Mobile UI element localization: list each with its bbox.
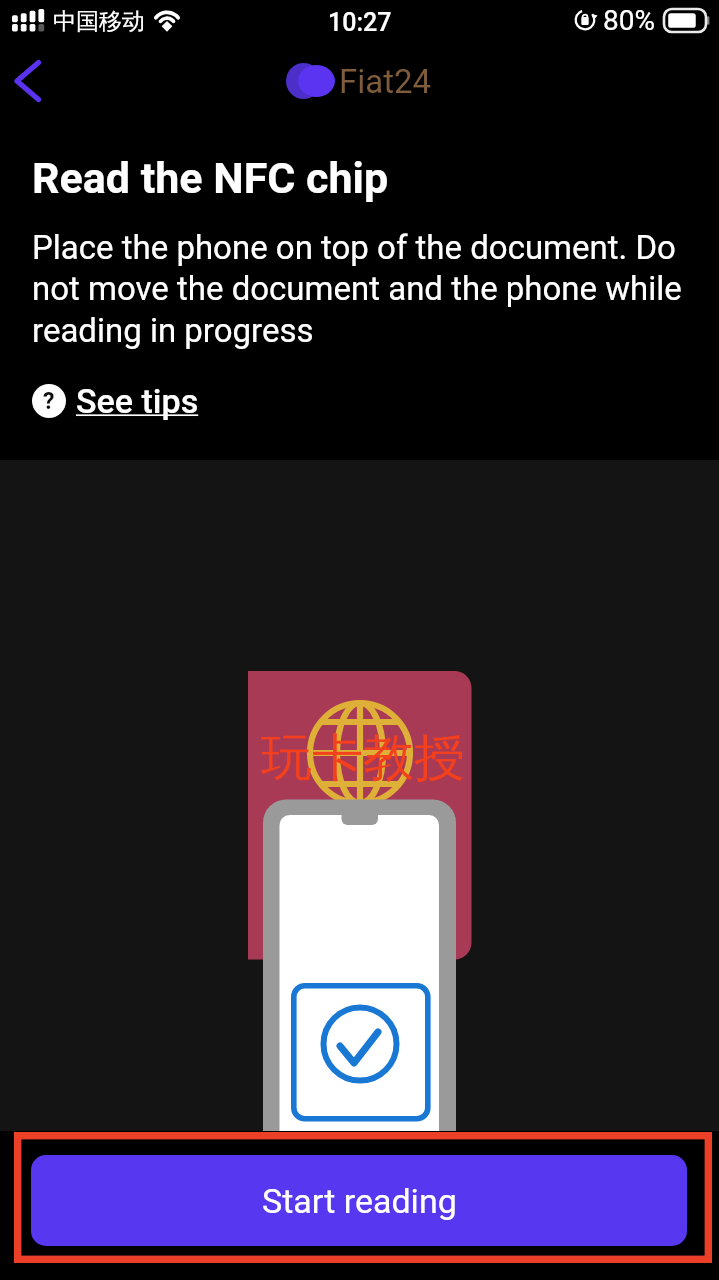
button[interactable]: ? [32,381,199,421]
button[interactable]: Back [2,52,56,110]
staticText: 80% [603,4,655,37]
staticText: Read the NFC chip [32,153,389,203]
staticText: Start reading [262,1181,457,1221]
staticText: ? [43,388,55,415]
staticText: See tips [76,381,199,421]
staticText: 10:27 [328,8,392,37]
staticText: Fiat24 [339,62,432,101]
staticText: 玩卡教授 [261,726,465,790]
staticText: Place the phone on top of the document. … [32,228,699,350]
staticText: 中国移动 [53,7,145,36]
button[interactable]: Start reading [31,1155,687,1246]
